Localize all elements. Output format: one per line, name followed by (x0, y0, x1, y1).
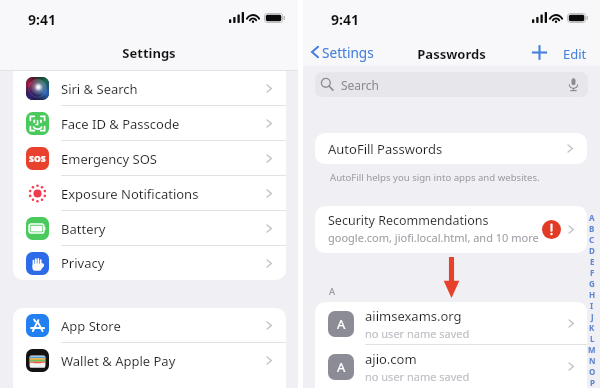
staticText: aiimsexams.org (365, 307, 462, 325)
staticText: A (329, 285, 336, 298)
staticText: no user name saved (365, 326, 470, 341)
button[interactable]: Settings (308, 41, 377, 63)
staticText: Edit (563, 45, 587, 63)
staticText: C (589, 234, 595, 245)
staticText: D (589, 245, 595, 256)
staticText: L (590, 333, 595, 344)
staticText: M (588, 344, 596, 355)
staticText: SOS (29, 153, 46, 165)
staticText: Security Recommendations (328, 212, 489, 229)
button[interactable]: Search (315, 72, 588, 97)
staticText: A (337, 358, 346, 376)
button[interactable]: Add password (529, 42, 550, 63)
button[interactable]: Battery (13, 211, 286, 246)
staticText: Settings (0, 44, 298, 62)
staticText: J (591, 311, 594, 322)
staticText: K (589, 322, 595, 333)
staticText: ajio.com (365, 350, 417, 368)
button[interactable]: Exposure Notifications (13, 176, 286, 211)
button[interactable]: Face ID & Passcode (13, 106, 286, 141)
staticText: N (589, 355, 596, 366)
staticText: G (589, 278, 595, 289)
staticText: P (590, 377, 595, 388)
staticText: 9:41 (28, 10, 56, 29)
staticText: O (589, 366, 596, 377)
button[interactable]: SOS (13, 141, 286, 176)
button[interactable]: Security Recommendations (315, 206, 587, 253)
staticText: A (589, 212, 595, 223)
staticText: E (590, 256, 595, 267)
button[interactable]: AutoFill Passwords (315, 133, 587, 164)
button[interactable]: A (315, 302, 587, 345)
staticText: google.com, jiofi.local.html, and 10 mor… (328, 230, 539, 245)
button[interactable]: App Store (13, 308, 286, 343)
button[interactable]: Edit (561, 43, 589, 65)
button[interactable]: A (315, 345, 587, 388)
staticText: Settings (322, 43, 374, 62)
staticText: Exposure Notifications (61, 185, 199, 203)
staticText: B (589, 223, 595, 234)
staticText: F (590, 267, 595, 278)
staticText: Siri & Search (61, 80, 138, 98)
staticText: App Store (61, 317, 121, 335)
staticText: Wallet & Apple Pay (61, 352, 176, 370)
staticText: Emergency SOS (61, 150, 157, 168)
button[interactable]: Privacy (13, 246, 286, 280)
staticText: Privacy (61, 254, 105, 272)
staticText: Search (341, 77, 379, 93)
staticText: no user name saved (365, 369, 470, 384)
staticText: AutoFill Passwords (328, 140, 443, 158)
staticText: Passwords (303, 45, 600, 63)
staticText: Face ID & Passcode (61, 115, 180, 133)
staticText: Battery (61, 220, 106, 238)
button[interactable]: Wallet & Apple Pay (13, 343, 286, 378)
staticText: H (589, 289, 596, 300)
staticText: 9:41 (331, 10, 359, 29)
staticText: A (337, 315, 346, 333)
staticText: AutoFill helps you sign into apps and we… (330, 171, 540, 184)
button[interactable]: Siri & Search (13, 71, 286, 106)
staticText: I (590, 300, 594, 311)
